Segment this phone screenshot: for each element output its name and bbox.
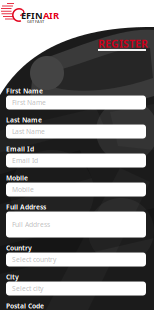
staticText: Email Id <box>6 145 34 153</box>
staticText: Full Address <box>6 203 46 211</box>
staticText: Country <box>6 244 32 252</box>
button[interactable]: Mobile <box>6 182 146 196</box>
button[interactable]: Email Id <box>6 153 146 167</box>
staticText: Select city <box>12 284 43 293</box>
staticText: First Name <box>6 87 43 95</box>
staticText: Last Name <box>12 127 45 136</box>
staticText: Postal Code <box>6 302 44 310</box>
staticText: Last Name <box>6 116 42 124</box>
staticText: GET FAST <box>27 19 44 24</box>
button[interactable]: Full Address <box>6 211 146 237</box>
staticText: REGISTER <box>98 36 148 51</box>
staticText: Email Id <box>12 156 38 165</box>
staticText: Select country <box>12 255 56 264</box>
staticText: Full Address <box>12 220 50 229</box>
button[interactable]: Select city <box>6 281 146 295</box>
staticText: AIR <box>43 9 59 22</box>
button[interactable]: Last Name <box>6 124 146 138</box>
button[interactable]: Select country <box>6 252 146 266</box>
staticText: Mobile <box>12 185 34 194</box>
button[interactable]: First Name <box>6 95 146 109</box>
staticText: Mobile <box>6 174 28 182</box>
staticText: City <box>6 273 19 281</box>
staticText: First Name <box>12 98 46 107</box>
staticText: EFIN <box>21 9 43 22</box>
